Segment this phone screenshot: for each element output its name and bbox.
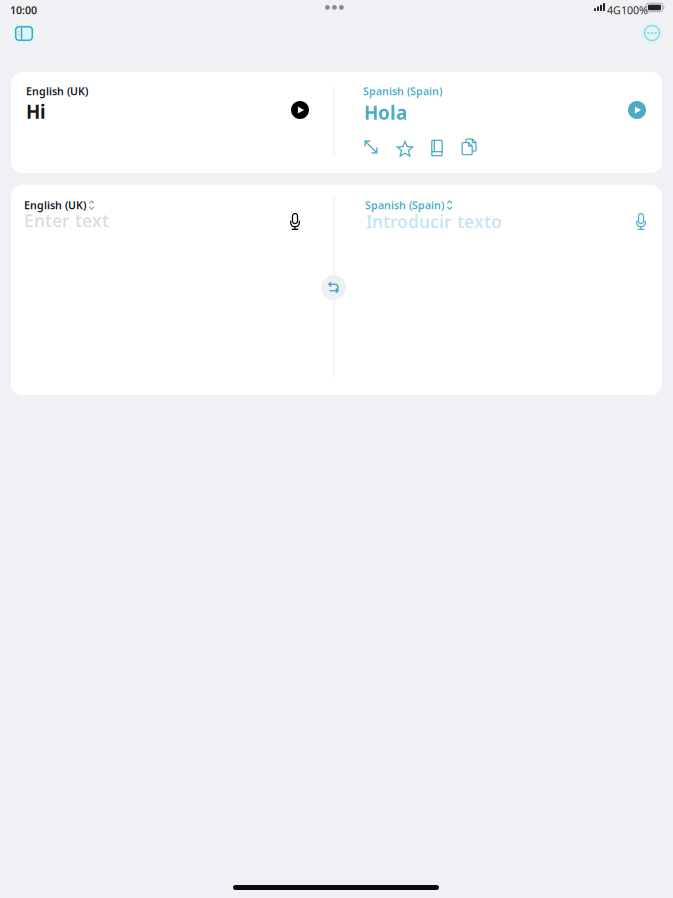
button[interactable]: More Options: [635, 19, 669, 47]
button[interactable]: Show Sidebar: [7, 19, 41, 47]
staticText: 4G: [607, 3, 621, 17]
staticText: Hi: [26, 99, 46, 124]
staticText: English (UK): [24, 198, 86, 212]
staticText: Spanish (Spain): [363, 84, 442, 98]
button[interactable]: Choose target language: [364, 197, 454, 213]
staticText: Spanish (Spain): [365, 198, 444, 212]
button[interactable]: Swap Languages: [321, 275, 346, 300]
button[interactable]: Copy Translation: [454, 133, 486, 161]
button[interactable]: Dictionary: [421, 134, 453, 162]
staticText: 10:00: [10, 3, 37, 17]
staticText: 100%: [621, 3, 648, 17]
button[interactable]: Dictate Spanish: [624, 206, 658, 238]
staticText: Introducir texto: [366, 210, 502, 233]
staticText: Enter text: [24, 209, 109, 232]
button[interactable]: Play English translation: [283, 94, 317, 126]
button[interactable]: Full Screen: [355, 133, 387, 161]
button[interactable]: Choose source language: [23, 197, 96, 213]
button[interactable]: Add to Favourites: [389, 135, 421, 163]
staticText: English (UK): [26, 84, 88, 98]
staticText: Hola: [364, 100, 407, 125]
button[interactable]: Play Spanish translation: [620, 94, 654, 126]
button[interactable]: Dictate English: [278, 206, 312, 238]
